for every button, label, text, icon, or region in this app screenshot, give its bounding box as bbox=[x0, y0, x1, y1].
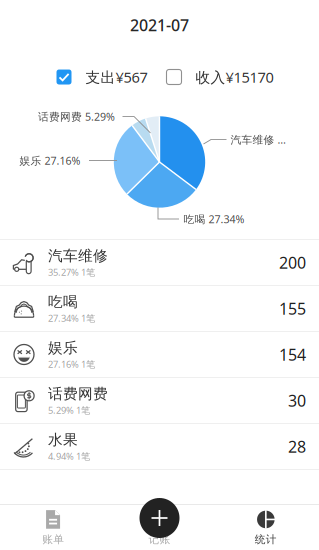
staticText: 5.29% 1笔 bbox=[48, 404, 90, 416]
staticText: 账单 bbox=[42, 533, 64, 546]
staticText: 吃喝 bbox=[48, 293, 78, 311]
button[interactable]: 统计 bbox=[213, 509, 319, 546]
button[interactable]: 收入¥15170 bbox=[166, 67, 273, 87]
staticText: 30 bbox=[288, 390, 306, 411]
staticText: 话费网费 5.29% bbox=[38, 109, 115, 124]
staticText: 支出¥567 bbox=[85, 67, 147, 87]
button[interactable]: 吃喝 bbox=[0, 286, 319, 332]
staticText: 200 bbox=[279, 252, 306, 273]
staticText: 统计 bbox=[255, 533, 277, 546]
staticText: 吃喝 27.34% bbox=[183, 212, 244, 226]
staticText: 2021-07 bbox=[130, 14, 189, 36]
button[interactable]: 支出¥567 bbox=[56, 67, 147, 87]
staticText: 154 bbox=[279, 344, 306, 365]
button[interactable]: 记账 bbox=[106, 509, 213, 546]
staticText: 娱乐 27.16% bbox=[19, 153, 80, 168]
staticText: 27.16% 1笔 bbox=[48, 358, 95, 370]
button[interactable]: 水果 bbox=[0, 424, 319, 470]
button[interactable]: Add entry bbox=[139, 498, 179, 538]
staticText: 27.34% 1笔 bbox=[48, 312, 95, 324]
button[interactable]: 账单 bbox=[0, 509, 106, 546]
staticText: 4.94% 1笔 bbox=[48, 450, 90, 462]
staticText: 话费网费 bbox=[48, 385, 108, 403]
staticText: 水果 bbox=[48, 431, 78, 449]
button[interactable]: 娱乐 bbox=[0, 332, 319, 378]
button[interactable]: 汽车维修 bbox=[0, 240, 319, 286]
staticText: 35.27% 1笔 bbox=[48, 266, 95, 278]
staticText: 娱乐 bbox=[48, 339, 78, 357]
staticText: 汽车维修 … bbox=[230, 132, 285, 147]
staticText: 汽车维修 bbox=[48, 247, 108, 265]
staticText: 记账 bbox=[148, 533, 170, 546]
staticText: 155 bbox=[279, 298, 306, 319]
staticText: 28 bbox=[288, 436, 306, 457]
button[interactable]: 话费网费 bbox=[0, 378, 319, 424]
staticText: 收入¥15170 bbox=[195, 67, 273, 87]
